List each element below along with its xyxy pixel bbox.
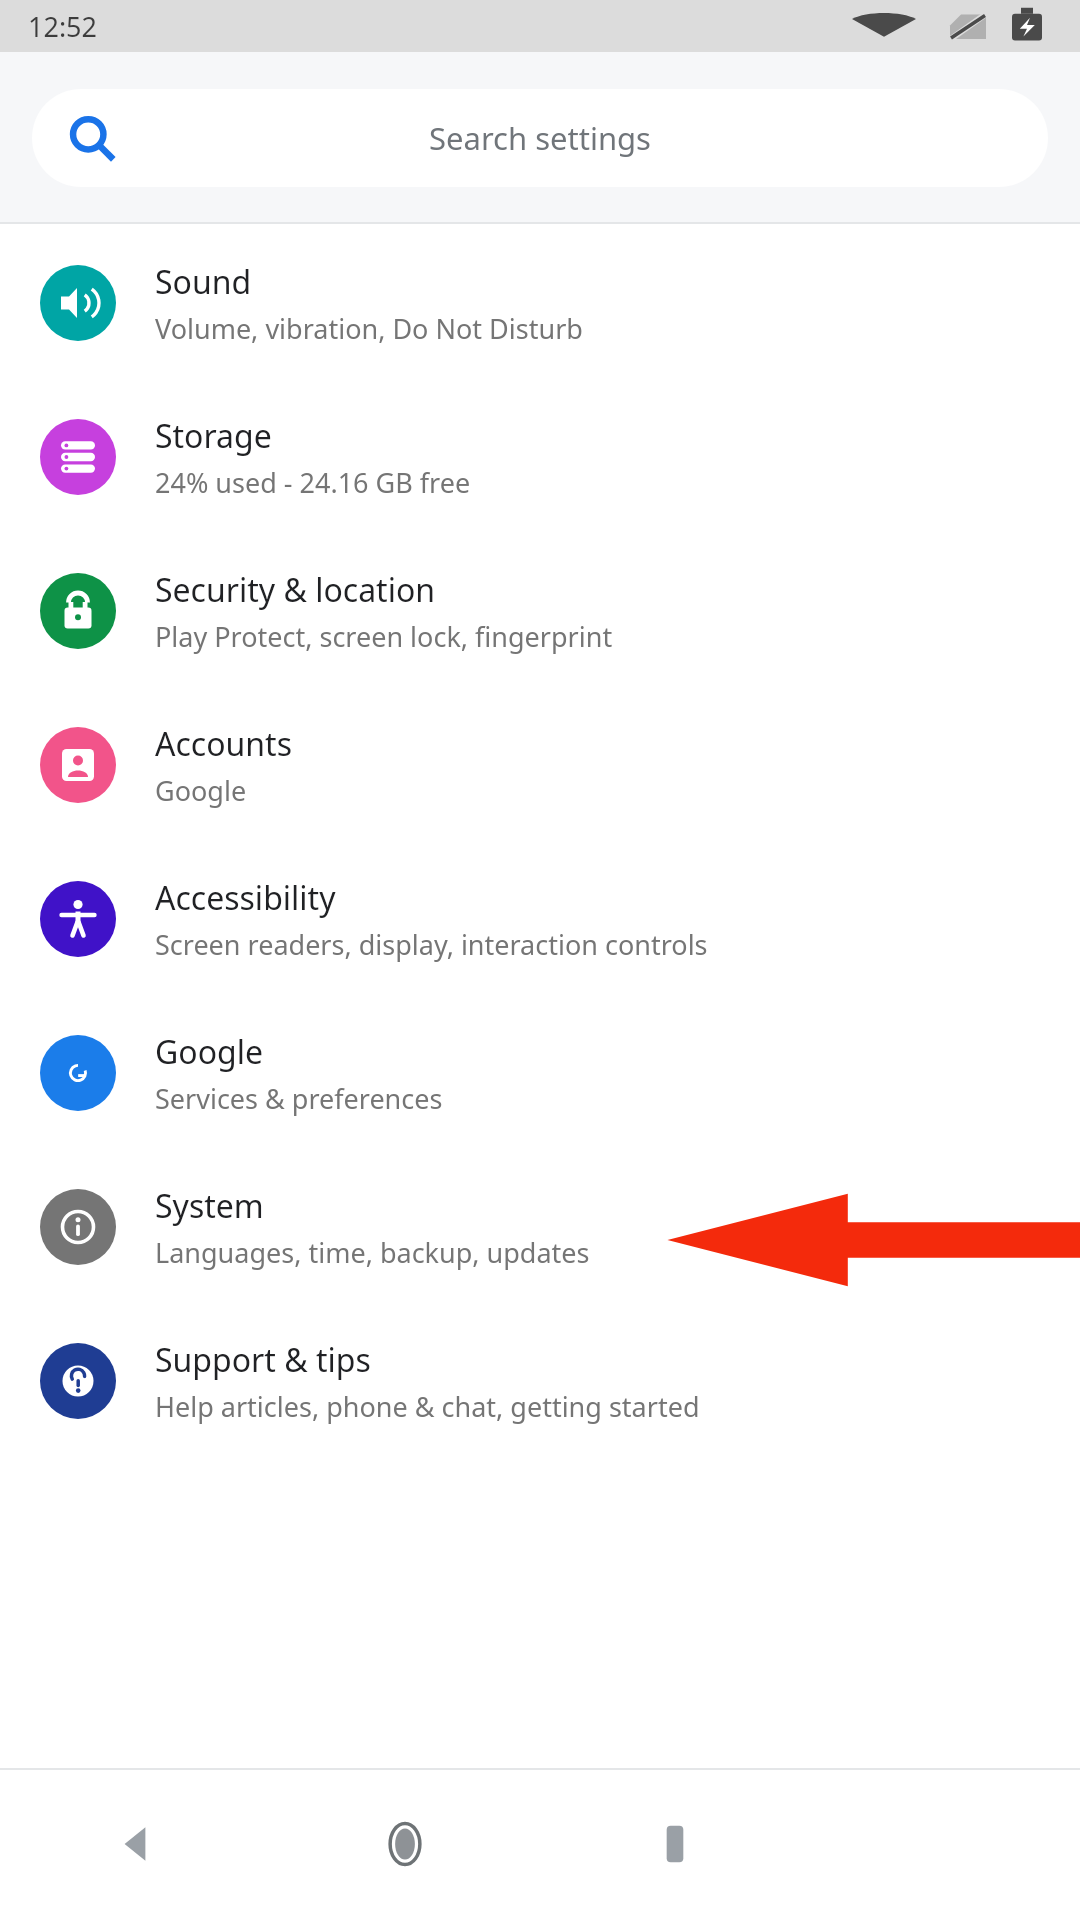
staticText: Storage bbox=[155, 414, 272, 458]
staticText: 24% used - 24.16 GB free bbox=[155, 464, 471, 501]
staticText: Accounts bbox=[155, 722, 292, 766]
staticText: Screen readers, display, interaction con… bbox=[155, 926, 708, 963]
button[interactable]: Sound bbox=[0, 226, 1080, 380]
staticText: System bbox=[155, 1184, 264, 1228]
staticText: Sound bbox=[155, 260, 252, 304]
button[interactable]: Storage bbox=[0, 380, 1080, 534]
staticText: Google bbox=[155, 772, 247, 809]
staticText: Services & preferences bbox=[155, 1080, 443, 1117]
button[interactable]: System bbox=[0, 1150, 1080, 1304]
button[interactable]: Search settings bbox=[32, 89, 1048, 187]
staticText: Volume, vibration, Do Not Disturb bbox=[155, 310, 583, 347]
staticText: Security & location bbox=[155, 568, 436, 612]
staticText: Support & tips bbox=[155, 1338, 371, 1382]
staticText: Google bbox=[155, 1030, 264, 1074]
button[interactable]: Support & tips bbox=[0, 1304, 1080, 1458]
staticText: Languages, time, backup, updates bbox=[155, 1234, 590, 1271]
button[interactable]: Security & location bbox=[0, 534, 1080, 688]
button[interactable]: Back bbox=[0, 1768, 270, 1920]
button[interactable]: Home bbox=[270, 1768, 540, 1920]
staticText: Help articles, phone & chat, getting sta… bbox=[155, 1388, 700, 1425]
staticText: Accessibility bbox=[155, 876, 336, 920]
button[interactable]: Google bbox=[0, 996, 1080, 1150]
staticText: Play Protect, screen lock, fingerprint bbox=[155, 618, 613, 655]
staticText: 12:52 bbox=[28, 8, 98, 45]
button[interactable]: Recent apps bbox=[540, 1768, 810, 1920]
button[interactable]: Accessibility bbox=[0, 842, 1080, 996]
button[interactable]: Accounts bbox=[0, 688, 1080, 842]
staticText: Search settings bbox=[429, 117, 651, 159]
